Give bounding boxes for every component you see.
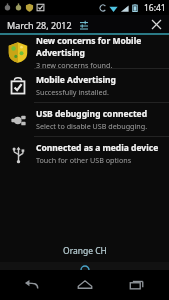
staticText: 3 new concerns found. (36, 60, 113, 68)
button[interactable]: New concerns for Mobile Advertising (0, 35, 169, 68)
staticText: 16:41 (144, 2, 166, 14)
staticText: USB debugging connected (36, 108, 148, 120)
staticText: Touch for other USB options (36, 155, 132, 165)
staticText: Orange CH (63, 245, 107, 257)
button[interactable]: Clear all notifications (148, 16, 164, 32)
button[interactable]: Recent apps (116, 270, 158, 300)
button[interactable]: Connected as a media device (0, 137, 169, 170)
button[interactable]: Home (64, 270, 106, 300)
staticText: March 28, 2012 (7, 19, 72, 31)
staticText: Connected as a media device (36, 142, 159, 154)
staticText: New concerns for Mobile Advertising (36, 35, 163, 59)
button[interactable]: Back (11, 270, 53, 300)
button[interactable]: Mobile Advertising (0, 69, 169, 102)
staticText: Select to disable USB debugging. (36, 121, 148, 131)
staticText: Successfully installed. (36, 87, 109, 97)
button[interactable]: Quick settings (77, 18, 90, 31)
button[interactable]: Close notification shade (0, 262, 169, 278)
staticText: Mobile Advertising (36, 74, 116, 86)
button[interactable]: USB debugging connected (0, 103, 169, 136)
